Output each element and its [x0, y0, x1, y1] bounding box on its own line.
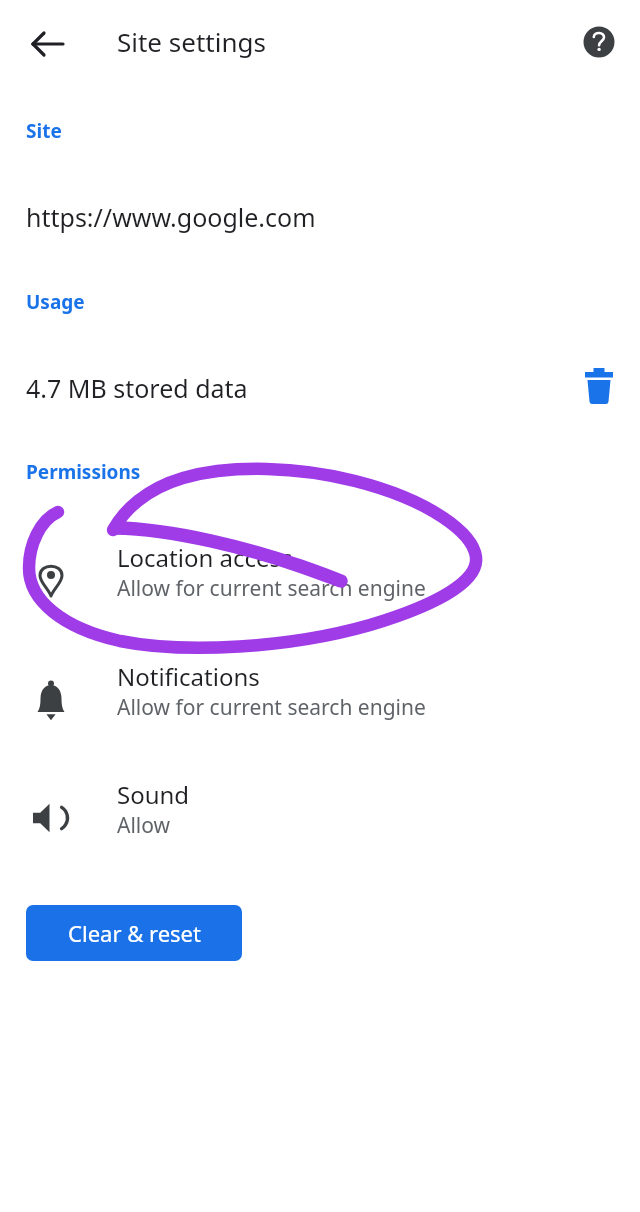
staticText: Notifications: [117, 660, 260, 693]
button[interactable]: Delete stored data: [572, 358, 626, 412]
button[interactable]: Clear & reset: [26, 905, 242, 961]
button[interactable]: Notifications: [0, 654, 640, 736]
staticText: Clear & reset: [68, 918, 201, 948]
staticText: Permissions: [26, 459, 141, 485]
button[interactable]: Sound: [0, 772, 640, 854]
button[interactable]: Help: [575, 18, 623, 66]
staticText: Location access: [117, 541, 293, 574]
staticText: Allow for current search engine: [117, 574, 426, 603]
staticText: Sound: [117, 778, 190, 811]
button[interactable]: Back: [20, 16, 76, 72]
staticText: Allow for current search engine: [117, 693, 426, 722]
staticText: Site: [26, 118, 62, 144]
staticText: Site settings: [117, 24, 266, 59]
button[interactable]: Location access: [0, 535, 640, 617]
staticText: 4.7 MB stored data: [26, 371, 248, 405]
staticText: https://www.google.com: [26, 200, 316, 234]
staticText: Allow: [117, 811, 171, 840]
staticText: Usage: [26, 289, 85, 315]
